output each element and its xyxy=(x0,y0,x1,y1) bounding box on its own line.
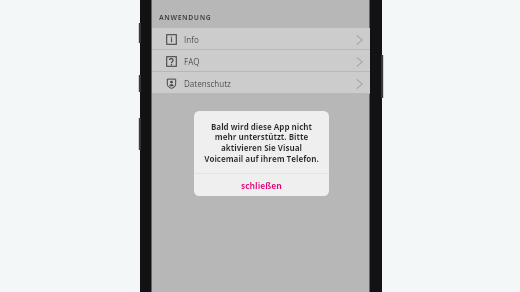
staticText: FAQ xyxy=(184,56,200,67)
button[interactable]: schließen xyxy=(194,174,329,196)
button[interactable]: FAQ xyxy=(152,50,370,71)
staticText: Datenschutz xyxy=(184,78,231,89)
staticText: schließen xyxy=(241,180,282,192)
button[interactable]: Info xyxy=(152,28,370,49)
staticText: Info xyxy=(184,34,199,45)
staticText: ANWENDUNG xyxy=(159,13,212,22)
button[interactable]: Datenschutz xyxy=(152,72,370,93)
staticText: Bald wird diese App nicht mehr unterstüt… xyxy=(199,121,324,165)
